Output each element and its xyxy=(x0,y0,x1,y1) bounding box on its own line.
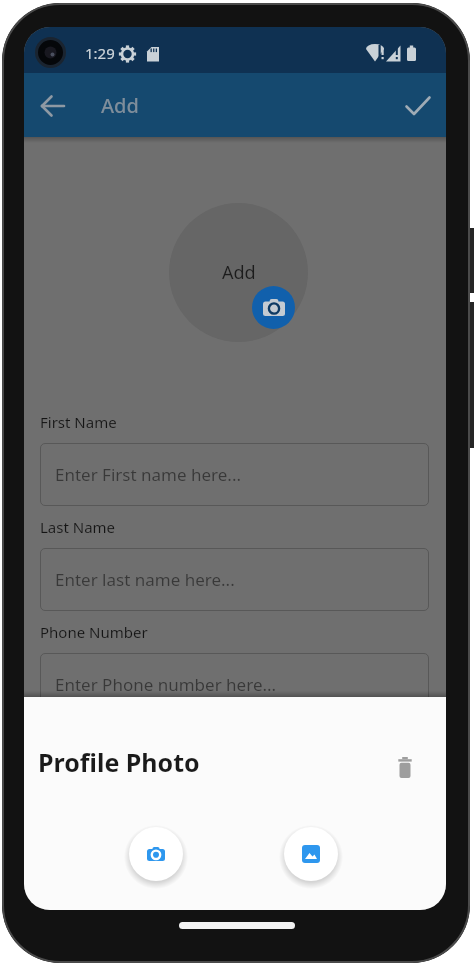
staticText: Profile Photo xyxy=(38,745,200,779)
staticText: Enter First name here... xyxy=(55,463,242,486)
staticText: First Name xyxy=(40,412,117,432)
staticText: 1:29 xyxy=(85,43,115,63)
button[interactable] xyxy=(32,90,74,122)
button[interactable]: Enter last name here... xyxy=(40,548,429,611)
button[interactable] xyxy=(390,752,420,782)
button[interactable]: Enter Phone number here... xyxy=(40,653,429,716)
staticText: Enter last name here... xyxy=(55,568,235,591)
button[interactable] xyxy=(396,89,440,123)
staticText: Add xyxy=(101,92,139,119)
staticText: Last Name xyxy=(40,517,116,537)
button[interactable] xyxy=(252,286,295,329)
staticText: Add xyxy=(222,260,256,285)
staticText: Enter Phone number here... xyxy=(55,673,277,696)
button[interactable]: Add xyxy=(169,203,308,342)
button[interactable]: Enter First name here... xyxy=(40,443,429,506)
staticText: Phone Number xyxy=(40,622,148,642)
button[interactable] xyxy=(284,827,338,881)
button[interactable] xyxy=(129,827,183,881)
